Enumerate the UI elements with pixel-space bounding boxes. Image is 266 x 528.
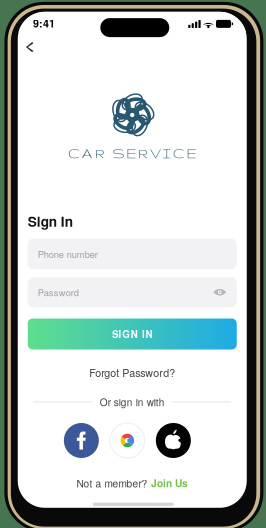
staticText: Sign In xyxy=(28,211,73,231)
button[interactable]: SIGN IN xyxy=(28,318,237,349)
button[interactable]: Back xyxy=(17,34,43,60)
staticText: Forgot Password? xyxy=(89,365,175,380)
staticText: Or sign in with xyxy=(100,395,165,409)
staticText: SIGN IN xyxy=(112,327,153,341)
button[interactable]: Sign in with Facebook xyxy=(64,423,99,458)
staticText: Join Us xyxy=(151,476,188,490)
staticText: 9:41 xyxy=(33,16,55,31)
button[interactable]: Join Us xyxy=(151,476,188,490)
staticText: Phone number xyxy=(38,247,98,261)
staticText: Not a member? xyxy=(76,476,147,490)
staticText: CAR SERVICE xyxy=(68,146,196,161)
button[interactable]: Sign in with Apple xyxy=(156,423,191,458)
button[interactable]: Sign in with Google xyxy=(110,423,145,458)
button[interactable]: Forgot Password? xyxy=(89,364,175,380)
staticText: Password xyxy=(38,285,79,299)
button[interactable]: Show password xyxy=(210,282,230,302)
